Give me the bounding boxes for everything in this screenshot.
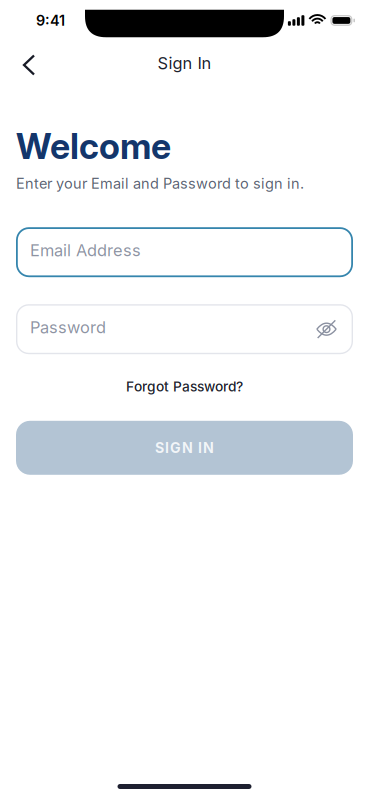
staticText: Password (30, 317, 106, 337)
button[interactable]: Forgot Password? (126, 378, 243, 395)
staticText: SIGN IN (155, 439, 214, 456)
staticText: Sign In (157, 53, 211, 73)
button[interactable]: Show password (316, 319, 353, 340)
staticText: 9:41 (36, 12, 65, 29)
button[interactable]: Back (0, 56, 34, 75)
staticText: Forgot Password? (126, 378, 243, 395)
staticText: Enter your Email and Password to sign in… (16, 175, 304, 192)
staticText: Welcome (16, 125, 171, 168)
staticText: Email Address (30, 240, 141, 260)
button[interactable]: SIGN IN (16, 421, 353, 475)
